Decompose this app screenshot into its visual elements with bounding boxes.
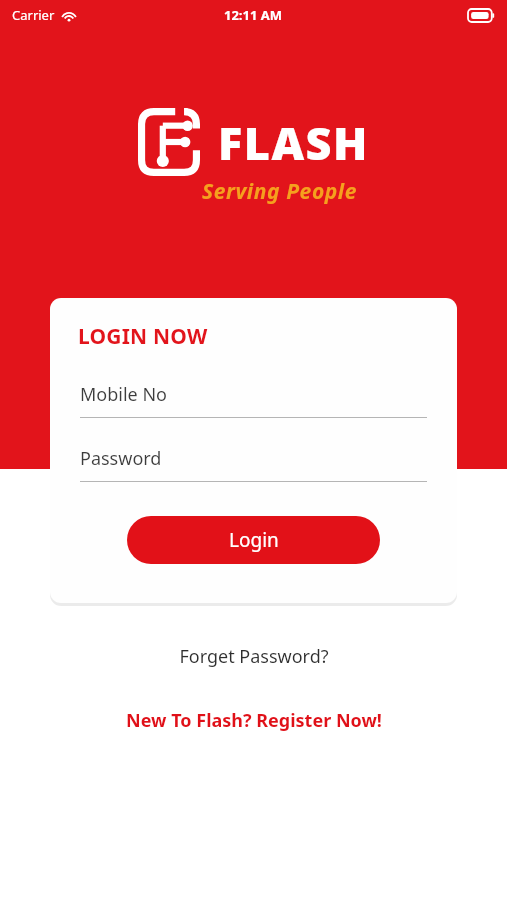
button[interactable]: Mobile No [80, 382, 427, 417]
staticText: Login [229, 527, 279, 553]
button[interactable]: Login [127, 516, 380, 564]
staticText: Serving People [202, 177, 358, 206]
other: Flash logo [138, 108, 200, 176]
button[interactable]: New To Flash? Register Now! [116, 704, 392, 737]
staticText: Forget Password? [179, 644, 329, 669]
button[interactable]: Password [80, 446, 427, 481]
other: Battery full [468, 9, 495, 22]
other: Wi-Fi signal [61, 9, 77, 22]
staticText: LOGIN NOW [78, 322, 208, 351]
staticText: FLASH [218, 112, 370, 173]
staticText: Carrier [12, 6, 55, 24]
button[interactable]: Forget Password? [169, 640, 339, 673]
staticText: 12:11 AM [224, 6, 283, 24]
staticText: New To Flash? Register Now! [126, 708, 382, 733]
staticText: Password [80, 446, 162, 471]
staticText: Mobile No [80, 382, 167, 407]
